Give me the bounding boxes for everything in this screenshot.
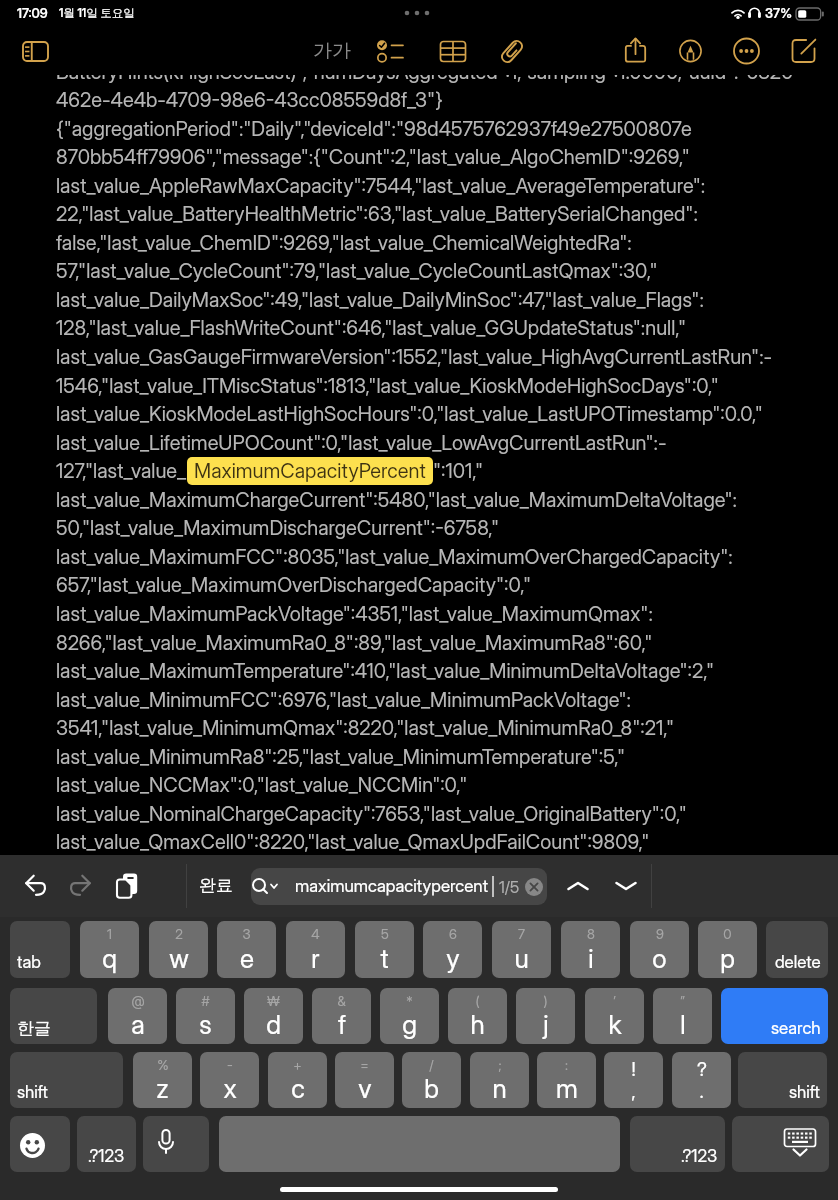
button[interactable]: Next result [606, 866, 646, 906]
staticText: 3 [242, 926, 251, 942]
button[interactable]: - [200, 1052, 259, 1108]
button[interactable]: & [312, 988, 371, 1044]
staticText: 8 [587, 926, 595, 942]
button[interactable]: % [133, 1052, 192, 1108]
staticText: tab [17, 952, 41, 973]
staticText: 22,"last_value_BatteryHealthMetric":63,"… [56, 202, 698, 226]
button[interactable]: Paste [105, 865, 145, 905]
button[interactable]: ? [672, 1052, 731, 1108]
button[interactable]: ) [516, 988, 575, 1044]
staticText: false,"last_value_ChemID":9269,"last_val… [56, 231, 632, 255]
button[interactable]: shift [10, 1052, 123, 1108]
staticText: 4 [311, 926, 320, 942]
staticText: ":101," [433, 459, 484, 483]
staticText: 6 [449, 926, 457, 942]
staticText: q [102, 943, 117, 974]
staticText: last_value_GasGaugeFirmwareVersion":1552… [56, 345, 773, 369]
staticText: last_value_MaximumPackVoltage":4351,"las… [56, 602, 653, 626]
staticText: last_value_MaximumChargeCurrent":5480,"l… [56, 488, 737, 512]
button[interactable]: search [721, 988, 828, 1044]
staticText: last_value_LifetimeUPOCount":0,"last_val… [56, 431, 667, 455]
staticText: y [446, 943, 460, 974]
button[interactable]: 2 [149, 921, 208, 978]
staticText: 1/5 [499, 877, 520, 896]
button[interactable]: Previous result [558, 866, 598, 906]
button[interactable]: Attachment [491, 31, 533, 72]
button[interactable]: Share [615, 30, 656, 72]
button[interactable]: Checklist [371, 31, 413, 72]
button[interactable]: Hide keyboard [732, 1116, 829, 1172]
staticText: 17:09 [17, 5, 48, 21]
button[interactable]: Undo [16, 865, 56, 905]
button[interactable]: 완료 [195, 869, 237, 901]
staticText: 37% [765, 5, 792, 21]
staticText: last_value_QmaxCell0":8220,"last_value_Q… [56, 830, 650, 854]
button[interactable]: tab [10, 921, 70, 978]
staticText: ₩ [267, 993, 280, 1009]
staticText: last_value_AppleRawMaxCapacity":7544,"la… [56, 174, 706, 198]
staticText: - [227, 1057, 233, 1073]
button[interactable]: New note [783, 30, 824, 72]
button[interactable]: Table [432, 31, 474, 72]
button[interactable]: .?123 [77, 1116, 136, 1172]
button[interactable]: + [268, 1052, 327, 1108]
staticText: @ [131, 993, 145, 1009]
button[interactable]: # [176, 988, 235, 1044]
button[interactable]: ₩ [244, 988, 303, 1044]
button[interactable]: maximumcapacitypercent [251, 868, 547, 905]
staticText: 462e-4e4b-4709-98e6-43cc08559d8f_3"} [56, 88, 443, 112]
button[interactable]: 0 [698, 921, 757, 978]
button[interactable]: ” [653, 988, 712, 1044]
button[interactable]: delete [766, 921, 828, 978]
button[interactable]: 4 [286, 921, 345, 978]
button[interactable]: 5 [355, 921, 414, 978]
button[interactable]: 3 [217, 921, 276, 978]
staticText: n [492, 1073, 507, 1104]
staticText: 128,"last_value_FlashWriteCount":646,"la… [56, 316, 687, 340]
button[interactable]: ! [604, 1052, 663, 1108]
staticText: ’ [613, 993, 616, 1009]
button[interactable]: 한글 [10, 988, 97, 1044]
staticText: , [631, 1080, 636, 1103]
button[interactable]: @ [108, 988, 167, 1044]
staticText: v [358, 1073, 372, 1104]
staticText: .?123 [88, 1146, 125, 1167]
staticText: shift [789, 1082, 820, 1103]
button[interactable]: Markup [670, 30, 711, 72]
staticText: f [338, 1009, 346, 1040]
staticText: 5 [381, 926, 389, 942]
staticText: maximumcapacitypercent [295, 876, 488, 897]
button[interactable]: 8 [561, 921, 620, 978]
button[interactable]: 가가 [306, 33, 358, 69]
button[interactable]: 9 [630, 921, 689, 978]
button[interactable]: Dictation [143, 1116, 209, 1172]
staticText: j [543, 1009, 549, 1040]
button[interactable]: Redo [60, 865, 100, 905]
staticText: last_value_MaximumFCC":8035,"last_value_… [56, 545, 733, 569]
staticText: w [169, 943, 189, 974]
button[interactable]: .?123 [630, 1116, 725, 1172]
button[interactable]: ’ [585, 988, 644, 1044]
button[interactable]: 7 [492, 921, 551, 978]
button[interactable]: = [335, 1052, 394, 1108]
staticText: o [652, 943, 667, 974]
button[interactable]: Sidebar [15, 31, 56, 72]
staticText: ? [697, 1058, 707, 1081]
button[interactable]: ; [470, 1052, 529, 1108]
button[interactable]: ( [448, 988, 507, 1044]
staticText: e [240, 943, 254, 974]
button[interactable]: 1 [80, 921, 139, 978]
button[interactable]: 6 [423, 921, 482, 978]
staticText: 57,"last_value_CycleCount":79,"last_valu… [56, 259, 658, 283]
button[interactable]: Emoji [10, 1116, 70, 1172]
button[interactable]: shift [738, 1052, 827, 1108]
button[interactable]: More [726, 30, 767, 72]
button[interactable]: : [537, 1052, 596, 1108]
staticText: = [360, 1057, 369, 1073]
button[interactable]: / [402, 1052, 461, 1108]
button[interactable]: * [380, 988, 439, 1044]
staticText: 2 [175, 926, 183, 942]
staticText: % [157, 1057, 169, 1073]
staticText: 한글 [17, 1018, 51, 1039]
